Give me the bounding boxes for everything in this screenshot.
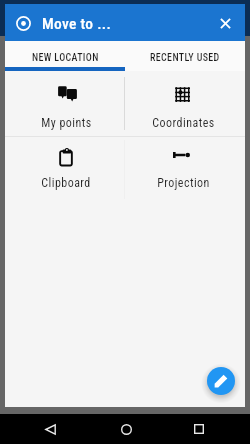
button[interactable]: NEW LOCATION (5, 41, 125, 71)
staticText: NEW LOCATION (32, 52, 99, 64)
button[interactable]: Home (111, 414, 141, 444)
button[interactable]: Close (213, 11, 237, 35)
staticText: Move to ... (42, 15, 112, 33)
staticText: Coordinates (152, 116, 215, 130)
staticText: Clipboard (41, 176, 91, 190)
button[interactable]: Recent apps (184, 414, 214, 444)
staticText: RECENTLY USED (150, 52, 220, 64)
button[interactable]: Coordinates (125, 71, 242, 136)
button[interactable]: RECENTLY USED (125, 41, 245, 71)
button[interactable]: My points (8, 71, 124, 136)
button[interactable]: Projection (125, 137, 242, 202)
button[interactable]: Edit (207, 367, 235, 395)
staticText: Projection (157, 176, 210, 190)
staticText: My points (41, 116, 92, 130)
button[interactable]: Back (35, 414, 65, 444)
button[interactable]: Clipboard (8, 137, 124, 202)
button[interactable]: Location marker (12, 12, 35, 35)
